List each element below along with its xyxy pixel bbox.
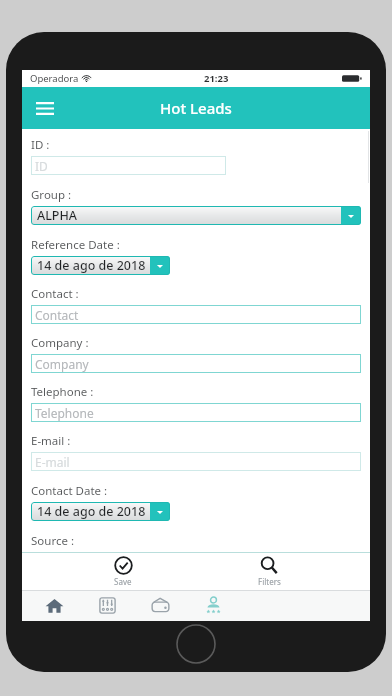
staticText: Filters xyxy=(258,576,281,587)
button[interactable]: Filters xyxy=(224,552,314,590)
button[interactable]: 14 de ago de 2018 xyxy=(31,256,170,275)
staticText: E-mail xyxy=(35,454,70,470)
staticText: ID xyxy=(35,158,48,174)
staticText: 21:23 xyxy=(204,72,229,85)
staticText: 14 de ago de 2018 xyxy=(37,503,146,520)
staticText: ID : xyxy=(31,137,50,153)
button[interactable]: 14 de ago de 2018 xyxy=(31,502,170,521)
staticText: Contact Date : xyxy=(31,483,108,499)
staticText: Source : xyxy=(31,533,74,549)
staticText: Telephone xyxy=(35,405,94,421)
staticText: Telephone : xyxy=(31,384,94,400)
button[interactable]: Home button xyxy=(176,624,216,664)
button[interactable]: E-mail xyxy=(31,452,361,471)
staticText: 14 de ago de 2018 xyxy=(37,257,146,274)
button[interactable]: Contact xyxy=(31,305,361,324)
staticText: E-mail : xyxy=(31,433,71,449)
button[interactable]: Menu xyxy=(30,93,60,123)
button[interactable]: Wallet xyxy=(134,590,187,621)
button[interactable]: Leads xyxy=(187,590,240,621)
staticText: Company xyxy=(35,356,89,372)
button[interactable]: ALPHA xyxy=(31,206,361,225)
button[interactable]: Save xyxy=(78,552,168,590)
button[interactable]: Home xyxy=(28,590,81,621)
staticText: Reference Date : xyxy=(31,237,120,253)
staticText: Company : xyxy=(31,335,89,351)
staticText: Hot Leads xyxy=(160,98,232,118)
staticText: Contact : xyxy=(31,286,79,302)
staticText: Operadora xyxy=(30,72,79,85)
staticText: Group : xyxy=(31,187,72,203)
staticText: Save xyxy=(114,576,132,587)
button[interactable]: Company xyxy=(31,354,361,373)
button[interactable]: ID xyxy=(31,156,226,175)
button[interactable]: Telephone xyxy=(31,403,361,422)
button[interactable]: Settings xyxy=(81,590,134,621)
staticText: ALPHA xyxy=(37,207,78,224)
staticText: Contact xyxy=(35,307,79,323)
